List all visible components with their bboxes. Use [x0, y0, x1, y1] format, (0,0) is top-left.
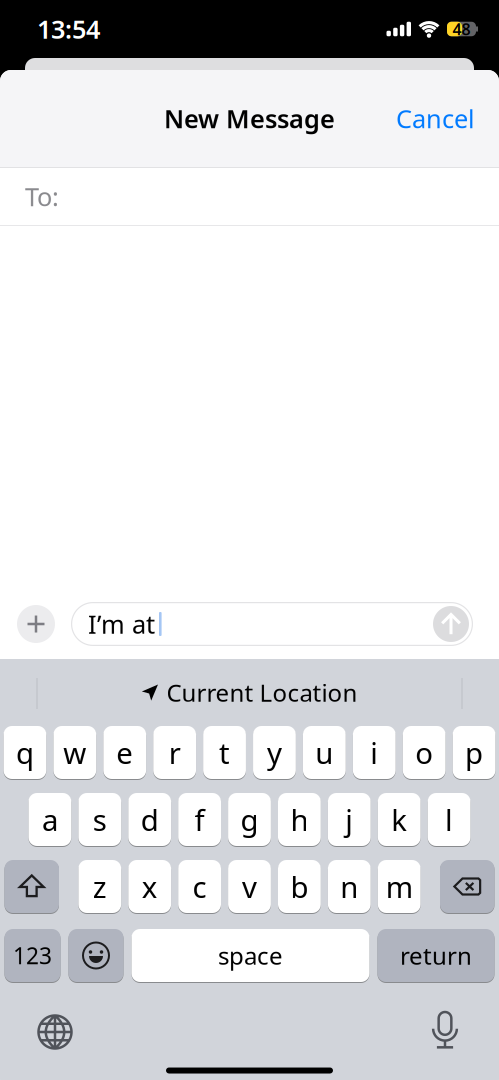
button[interactable]: l: [428, 793, 470, 846]
button[interactable]: Send: [433, 606, 469, 642]
staticText: Cancel: [396, 102, 475, 135]
button[interactable]: i: [353, 726, 396, 779]
staticText: f: [195, 800, 205, 839]
button[interactable]: h: [278, 793, 321, 846]
button[interactable]: m: [378, 860, 421, 913]
button[interactable]: j: [328, 793, 371, 846]
staticText: c: [193, 867, 207, 906]
staticText: b: [290, 867, 308, 906]
staticText: a: [42, 800, 58, 839]
staticText: return: [400, 940, 472, 971]
button[interactable]: Current Location: [141, 677, 357, 708]
button[interactable]: 123: [4, 929, 60, 982]
button[interactable]: Cancel: [396, 102, 475, 135]
button[interactable]: Dictation: [431, 1012, 458, 1050]
staticText: o: [415, 733, 433, 772]
staticText: t: [219, 733, 230, 772]
staticText: 123: [13, 940, 52, 970]
staticText: h: [290, 800, 308, 839]
button[interactable]: o: [403, 726, 445, 779]
button[interactable]: q: [3, 726, 46, 779]
button[interactable]: w: [53, 726, 96, 779]
button[interactable]: space: [131, 929, 369, 982]
staticText: u: [315, 733, 333, 772]
staticText: s: [93, 800, 107, 839]
button[interactable]: Message field: [71, 602, 473, 646]
button[interactable]: s: [78, 793, 121, 846]
button[interactable]: Delete: [440, 860, 494, 913]
staticText: n: [340, 867, 358, 906]
staticText: 48: [452, 18, 470, 40]
staticText: l: [445, 800, 453, 839]
button[interactable]: v: [228, 860, 271, 913]
button[interactable]: a: [28, 793, 71, 846]
staticText: 13:54: [37, 12, 100, 46]
staticText: z: [93, 867, 107, 906]
staticText: i: [370, 733, 378, 772]
button[interactable]: b: [278, 860, 321, 913]
button[interactable]: z: [78, 860, 121, 913]
button[interactable]: g: [228, 793, 271, 846]
button[interactable]: t: [203, 726, 246, 779]
button[interactable]: y: [253, 726, 296, 779]
button[interactable]: c: [178, 860, 221, 913]
staticText: x: [142, 867, 158, 906]
button[interactable]: x: [128, 860, 171, 913]
staticText: space: [218, 940, 283, 971]
button[interactable]: p: [453, 726, 495, 779]
staticText: g: [240, 800, 258, 839]
staticText: e: [116, 733, 133, 772]
staticText: r: [169, 733, 181, 772]
staticText: To:: [25, 180, 59, 213]
button[interactable]: Next keyboard: [38, 1015, 71, 1048]
staticText: w: [63, 733, 86, 772]
button[interactable]: Add attachment: [17, 605, 55, 643]
staticText: New Message: [164, 102, 335, 135]
staticText: v: [242, 867, 257, 906]
staticText: k: [391, 800, 407, 839]
button[interactable]: f: [178, 793, 221, 846]
button[interactable]: k: [378, 793, 421, 846]
staticText: I’m at: [88, 607, 155, 641]
staticText: j: [345, 800, 353, 839]
staticText: d: [141, 800, 159, 839]
button[interactable]: return: [377, 929, 494, 982]
staticText: m: [386, 867, 413, 906]
button[interactable]: d: [128, 793, 171, 846]
button[interactable]: u: [303, 726, 346, 779]
staticText: Current Location: [166, 677, 357, 708]
button[interactable]: Shift: [4, 860, 59, 913]
button[interactable]: e: [103, 726, 146, 779]
button[interactable]: n: [328, 860, 371, 913]
staticText: y: [267, 733, 282, 772]
button[interactable]: r: [153, 726, 196, 779]
staticText: p: [465, 733, 483, 772]
button[interactable]: Emoji: [68, 929, 123, 982]
staticText: q: [16, 733, 34, 772]
button[interactable]: To recipient: [0, 168, 499, 225]
